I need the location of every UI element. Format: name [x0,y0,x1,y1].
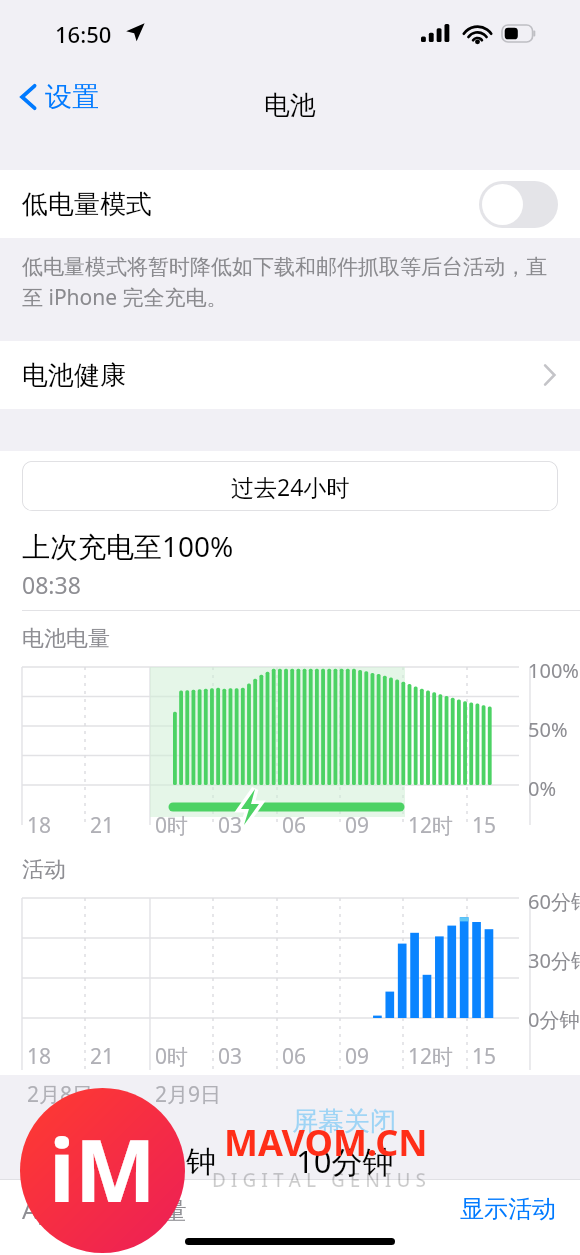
staticText: 06 [282,811,307,840]
staticText: 16:50 [55,19,112,49]
staticText: 06 [282,1042,307,1071]
staticText: 12时 [408,1042,454,1071]
staticText: iM [49,1110,156,1227]
staticText: 50% [528,716,568,743]
button[interactable]: 低电量模式 [0,170,580,238]
staticText: 电池电量 [22,625,110,653]
staticText: 电池健康 [22,359,126,392]
staticText: 09 [345,811,370,840]
button[interactable]: 电池健康 [0,341,580,409]
staticText: 2月8日 [27,1080,94,1109]
staticText: 21 [90,811,115,840]
staticText: 21 [90,1042,115,1071]
staticText: 15 [472,811,497,840]
staticText: 0时 [155,811,189,840]
staticText: 设置 [45,80,99,114]
staticText: 过去24小时 [231,471,350,502]
staticText: App的电池用量 [22,1193,187,1226]
staticText: 03 [218,811,243,840]
staticText: 18 [27,1042,52,1071]
staticText: 活动 [22,856,66,884]
staticText: 03 [218,1042,243,1071]
staticText: 低电量模式将暂时降低如下载和邮件抓取等后台活动，直至 iPhone 完全充电。 [22,254,560,311]
staticText: 0分钟 [528,1006,580,1033]
staticText: 2月9日 [155,1080,222,1109]
button[interactable]: 设置 [14,76,105,118]
staticText: 08:38 [22,569,81,600]
staticText: D I G I T A L G E N I U S [212,1167,426,1193]
staticText: 钟 [186,1143,216,1181]
staticText: MAVOM.CN [224,1118,428,1167]
staticText: 显示活动 [460,1194,556,1224]
staticText: 18 [27,811,52,840]
staticText: 15 [472,1042,497,1071]
staticText: 屏幕关闭 [292,1105,396,1138]
staticText: 上次充电至100% [22,527,234,565]
staticText: 60分钟 [528,888,580,915]
staticText: 低电量模式 [22,188,152,221]
staticText: 12时 [408,811,454,840]
staticText: 10分钟 [296,1140,394,1182]
staticText: 电池 [264,89,316,122]
button[interactable]: 过去24小时 [22,461,558,511]
staticText: 0% [528,775,557,802]
staticText: 100% [528,657,579,684]
button[interactable]: 显示活动 [456,1190,560,1228]
button[interactable]: 低电量模式开关 [479,181,558,228]
staticText: 30分钟 [528,947,580,974]
staticText: 0时 [155,1042,189,1071]
staticText: 09 [345,1042,370,1071]
